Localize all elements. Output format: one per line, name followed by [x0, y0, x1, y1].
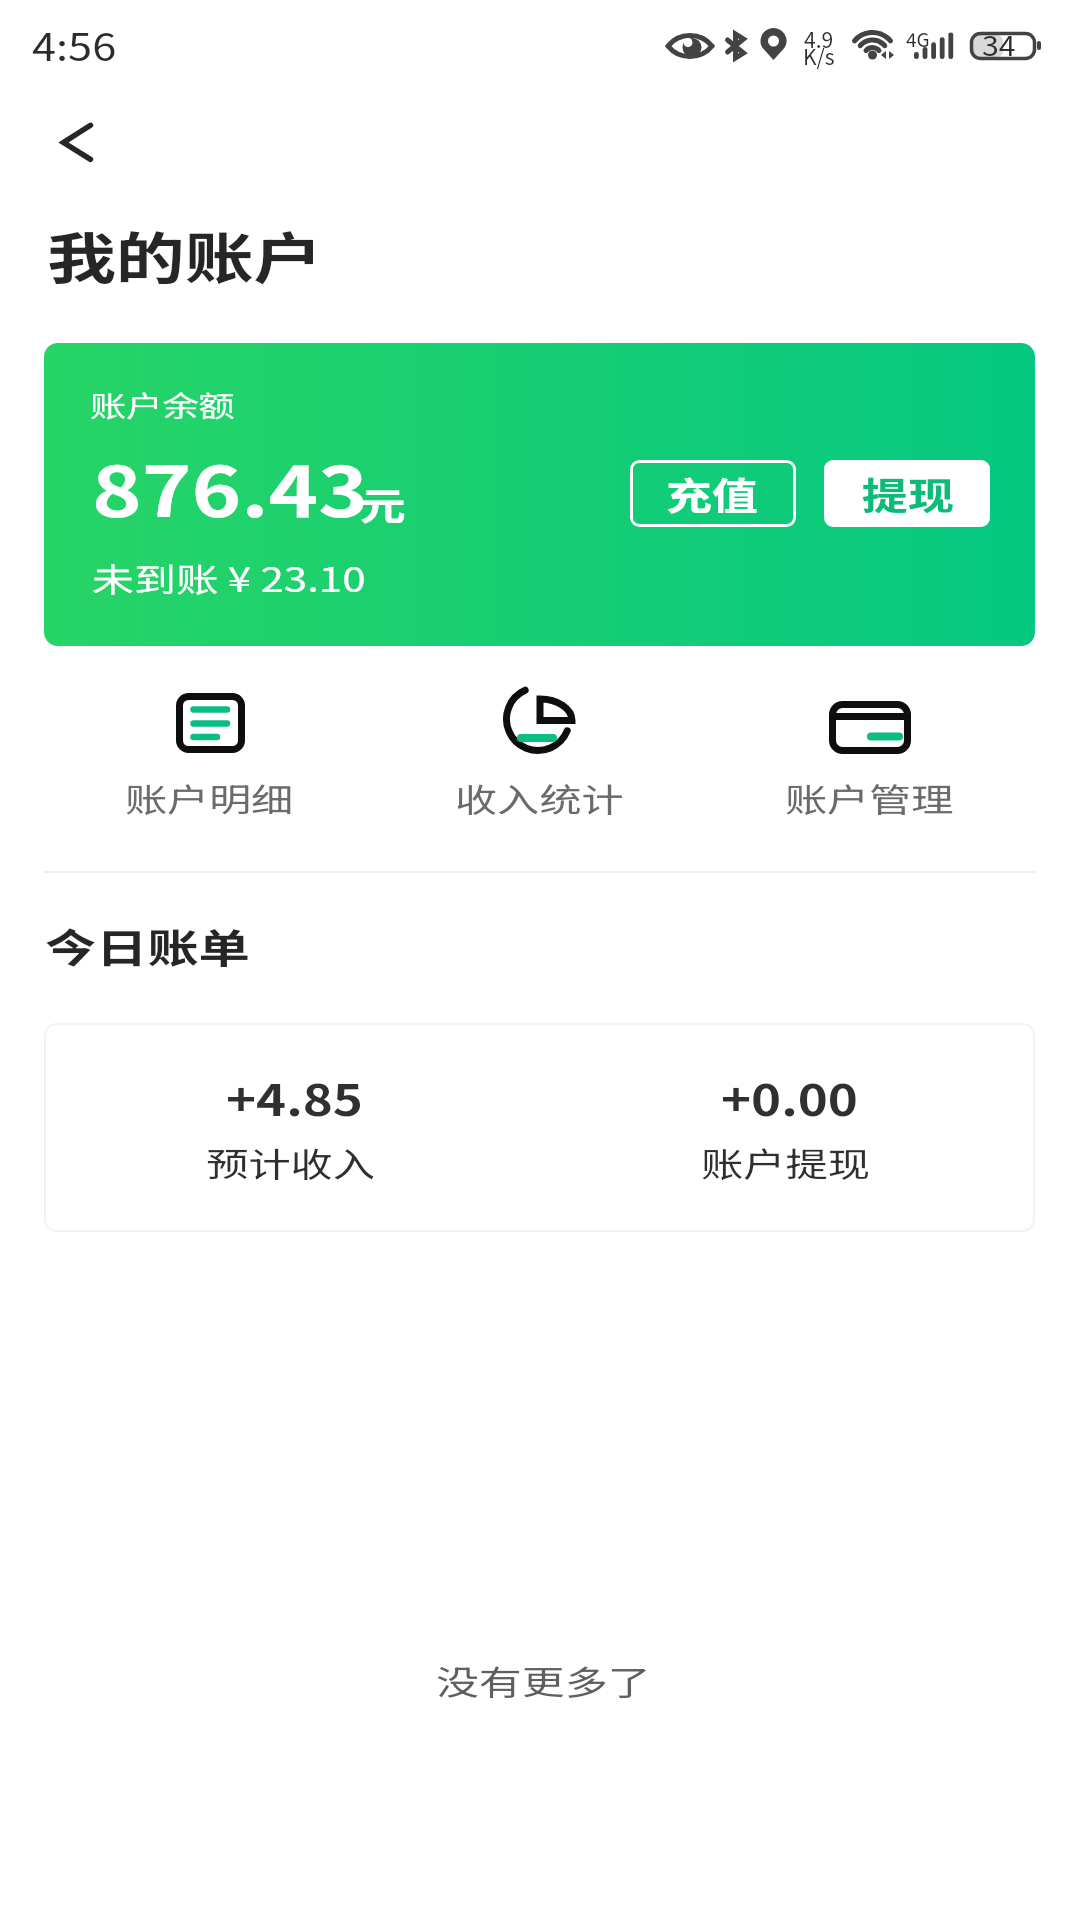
staticText: 4.9: [804, 24, 834, 54]
staticText: 账户管理: [785, 774, 953, 822]
staticText: +4.85: [226, 1065, 364, 1129]
button[interactable]: 收入统计: [375, 672, 705, 822]
staticText: 4:56: [32, 17, 116, 72]
button[interactable]: 账户管理: [705, 672, 1035, 822]
button[interactable]: 账户余额: [44, 343, 1035, 646]
staticText: 未到账 ¥ 23.10: [92, 554, 366, 602]
staticText: 账户明细: [125, 774, 293, 822]
staticText: K/s: [803, 41, 835, 71]
staticText: +0.00: [721, 1065, 859, 1129]
staticText: 账户余额: [90, 383, 236, 425]
button[interactable]: Back: [20, 98, 110, 188]
button[interactable]: 充值: [630, 460, 796, 527]
staticText: 没有更多了: [436, 1656, 650, 1705]
staticText: 4G: [906, 25, 930, 53]
button[interactable]: +4.85: [44, 1023, 539, 1232]
staticText: 收入统计: [455, 774, 623, 822]
staticText: 34: [982, 25, 1016, 64]
staticText: 充值: [666, 466, 759, 521]
staticText: 876.43: [92, 436, 369, 537]
staticText: 元: [360, 476, 407, 531]
staticText: 账户提现: [701, 1138, 870, 1187]
staticText: 我的账户: [47, 214, 322, 295]
staticText: 预计收入: [206, 1138, 375, 1187]
staticText: 提现: [862, 466, 955, 521]
staticText: 今日账单: [45, 917, 250, 975]
button[interactable]: 提现: [824, 460, 990, 527]
button[interactable]: 账户明细: [45, 672, 375, 822]
button[interactable]: +0.00: [539, 1023, 1035, 1232]
